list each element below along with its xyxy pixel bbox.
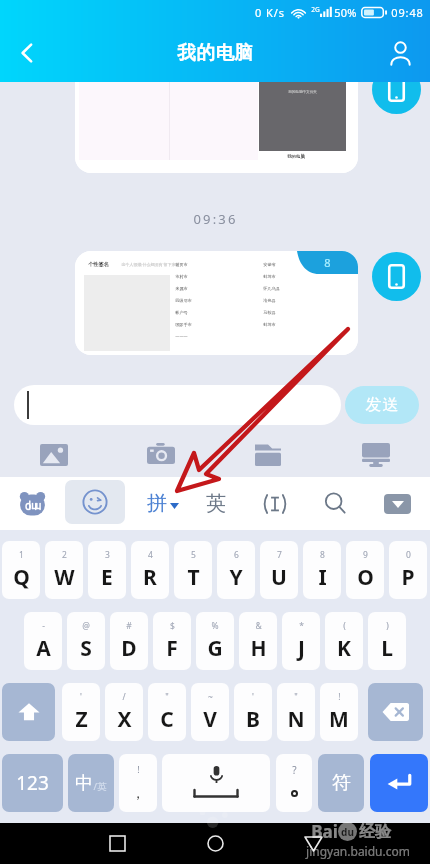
button[interactable]: 3: [88, 541, 126, 599]
staticText: Y: [229, 563, 243, 592]
staticText: 一一一: [175, 334, 188, 339]
button[interactable]: Message input: [14, 385, 341, 425]
button[interactable]: ": [148, 683, 186, 741]
button[interactable]: 6: [217, 541, 255, 599]
button[interactable]: 2: [45, 541, 83, 599]
button[interactable]: *: [282, 612, 320, 670]
button[interactable]: 个性签名: [75, 251, 358, 355]
button[interactable]: 4: [131, 541, 169, 599]
staticText: 8: [320, 549, 325, 561]
button[interactable]: $: [153, 612, 191, 670]
button[interactable]: Enter: [370, 754, 428, 812]
button[interactable]: -: [24, 612, 62, 670]
button[interactable]: Baidu input method: [8, 477, 56, 530]
button[interactable]: &: [239, 612, 277, 670]
staticText: Z: [75, 705, 88, 734]
staticText: /英: [93, 780, 107, 793]
staticText: 2: [62, 549, 67, 561]
button[interactable]: Camera: [107, 438, 214, 472]
staticText: 6: [234, 549, 239, 561]
button[interactable]: Back: [3, 29, 51, 77]
button[interactable]: !: [119, 754, 157, 812]
button[interactable]: Search: [309, 477, 361, 530]
button[interactable]: Contact avatar: [372, 252, 421, 301]
staticText: X: [117, 705, 132, 734]
button[interactable]: Emoji: [65, 480, 125, 524]
staticText: K: [337, 634, 351, 663]
button[interactable]: /: [105, 683, 143, 741]
button[interactable]: 5: [174, 541, 212, 599]
staticText: C: [160, 705, 174, 734]
staticText: F: [166, 634, 178, 663]
staticText: 3: [105, 549, 110, 561]
button[interactable]: Shift: [2, 683, 55, 741]
button[interactable]: Profile: [376, 29, 424, 77]
button[interactable]: 8: [303, 541, 341, 599]
button[interactable]: 1: [2, 541, 40, 599]
button[interactable]: (: [325, 612, 363, 670]
button[interactable]: 拼: [135, 477, 190, 530]
button[interactable]: ): [368, 612, 406, 670]
button[interactable]: ": [277, 683, 315, 741]
staticText: %: [211, 620, 219, 632]
button[interactable]: @: [67, 612, 105, 670]
staticText: ': [80, 691, 82, 703]
button[interactable]: %: [196, 612, 234, 670]
button[interactable]: 符: [318, 754, 364, 812]
button[interactable]: 0: [389, 541, 427, 599]
button[interactable]: Back: [291, 823, 335, 864]
button[interactable]: #: [110, 612, 148, 670]
button[interactable]: ~: [191, 683, 229, 741]
button[interactable]: 7: [260, 541, 298, 599]
staticText: 怀几乌县: [263, 286, 280, 291]
button[interactable]: Move cursor: [249, 477, 301, 530]
staticText: &: [255, 620, 262, 632]
button[interactable]: 9: [346, 541, 384, 599]
button[interactable]: ?: [276, 754, 312, 812]
staticText: -: [42, 620, 45, 632]
button[interactable]: Files: [214, 438, 322, 472]
staticText: 0 K/s: [255, 5, 285, 20]
staticText: Q: [13, 563, 30, 592]
button[interactable]: 我的电脑中文件夹: [75, 58, 358, 173]
staticText: N: [287, 705, 305, 734]
staticText: 我的电脑: [287, 154, 305, 160]
staticText: /: [122, 691, 126, 703]
button[interactable]: Contact avatar: [372, 65, 421, 114]
button[interactable]: 中: [68, 754, 114, 812]
button[interactable]: Space: [162, 754, 270, 812]
button[interactable]: Recent apps: [95, 823, 139, 864]
staticText: 马鞍县: [263, 310, 276, 315]
button[interactable]: ': [62, 683, 100, 741]
button[interactable]: 英: [190, 477, 242, 530]
staticText: B: [246, 705, 260, 734]
staticText: 中: [75, 772, 93, 795]
staticText: W: [54, 563, 75, 592]
button[interactable]: Hide keyboard: [371, 477, 423, 530]
staticText: 这个人很懒 什么都没有 留下来了: [121, 262, 180, 267]
staticText: ': [252, 691, 254, 703]
staticText: !: [137, 763, 140, 775]
staticText: 我的电脑: [177, 41, 254, 64]
button[interactable]: ': [234, 683, 272, 741]
button[interactable]: Home: [193, 823, 237, 864]
button[interactable]: My computer: [322, 438, 430, 472]
button[interactable]: Backspace: [368, 683, 423, 741]
staticText: L: [381, 634, 393, 663]
staticText: S: [80, 634, 92, 663]
staticText: 4: [148, 549, 153, 561]
staticText: 2G: [311, 5, 320, 14]
staticText: 蚌埠市: [263, 322, 276, 327]
staticText: @: [82, 620, 90, 632]
staticText: I: [318, 563, 327, 592]
button[interactable]: 发送: [345, 386, 419, 424]
staticText: ": [165, 691, 169, 703]
staticText: 四级居市: [175, 298, 192, 303]
staticText: 7: [277, 549, 282, 561]
staticText: ): [386, 620, 389, 632]
staticText: A: [36, 634, 51, 663]
button[interactable]: 123: [2, 754, 63, 812]
staticText: 5: [191, 549, 196, 561]
button[interactable]: Photos: [0, 438, 107, 472]
button[interactable]: !: [320, 683, 358, 741]
